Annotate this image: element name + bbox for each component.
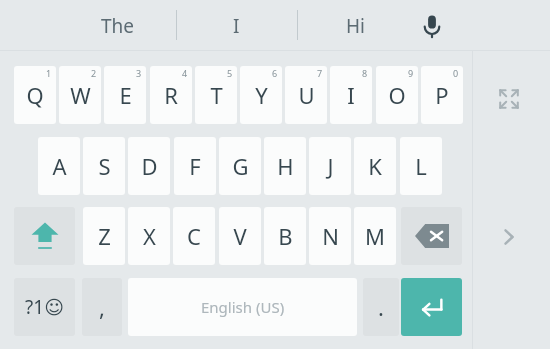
staticText: H [277, 151, 294, 181]
staticText: X [143, 221, 156, 251]
button[interactable]: G [219, 137, 261, 195]
button[interactable]: The [62, 0, 174, 51]
button[interactable]: A [38, 137, 80, 195]
staticText: English (US) [201, 297, 285, 317]
staticText: I [347, 80, 355, 110]
staticText: 1 [46, 67, 52, 79]
button[interactable]: F [174, 137, 216, 195]
button[interactable]: W [59, 66, 101, 124]
staticText: Z [98, 221, 111, 251]
button[interactable]: J [309, 137, 351, 195]
staticText: C [187, 221, 201, 251]
staticText: 3 [136, 67, 142, 79]
button[interactable]: E [104, 66, 146, 124]
staticText: ?1☺ [25, 294, 64, 320]
staticText: D [141, 151, 158, 181]
button[interactable]: . [363, 278, 399, 336]
staticText: B [278, 221, 293, 251]
button[interactable]: Q [14, 66, 56, 124]
staticText: S [98, 151, 111, 181]
staticText: T [210, 80, 223, 110]
button[interactable]: N [309, 207, 351, 265]
staticText: 6 [272, 67, 278, 79]
staticText: 2 [91, 67, 97, 79]
button[interactable]: K [354, 137, 396, 195]
button[interactable]: P [421, 66, 463, 124]
button[interactable]: Backspace [401, 207, 462, 265]
staticText: O [388, 80, 406, 110]
staticText: 4 [182, 67, 188, 79]
staticText: L [415, 151, 427, 181]
button[interactable]: V [219, 207, 261, 265]
staticText: Y [255, 80, 268, 110]
staticText: . [378, 292, 384, 322]
button[interactable]: L [400, 137, 442, 195]
button[interactable]: R [150, 66, 192, 124]
button[interactable]: O [376, 66, 418, 124]
staticText: 9 [408, 67, 414, 79]
button[interactable]: Y [240, 66, 282, 124]
staticText: 0 [453, 67, 459, 79]
button[interactable]: U [285, 66, 327, 124]
staticText: G [232, 151, 249, 181]
button[interactable]: , [82, 278, 122, 336]
button[interactable]: Next [490, 218, 528, 256]
staticText: 7 [317, 67, 323, 79]
button[interactable]: ?1☺ [14, 278, 75, 336]
staticText: , [99, 292, 105, 322]
button[interactable]: C [173, 207, 215, 265]
staticText: F [189, 151, 201, 181]
button[interactable]: Hi [299, 0, 411, 51]
button[interactable]: S [83, 137, 125, 195]
button[interactable]: B [264, 207, 306, 265]
staticText: M [365, 221, 385, 251]
staticText: Q [26, 80, 44, 110]
staticText: The [101, 13, 135, 39]
button[interactable]: D [128, 137, 170, 195]
staticText: A [52, 151, 67, 181]
button[interactable]: M [354, 207, 396, 265]
button[interactable]: Expand keyboard [490, 80, 528, 118]
staticText: N [322, 221, 339, 251]
button[interactable]: I [330, 66, 372, 124]
staticText: I [233, 13, 240, 39]
button[interactable]: X [128, 207, 170, 265]
staticText: E [119, 80, 132, 110]
button[interactable]: T [195, 66, 237, 124]
staticText: P [435, 80, 449, 110]
staticText: K [368, 151, 382, 181]
staticText: Hi [346, 13, 365, 39]
staticText: W [70, 80, 91, 110]
staticText: R [164, 80, 178, 110]
button[interactable]: Enter [401, 278, 462, 336]
button[interactable]: Z [83, 207, 125, 265]
button[interactable]: H [264, 137, 306, 195]
button[interactable]: Shift [14, 207, 75, 265]
staticText: U [298, 80, 315, 110]
button[interactable]: I [180, 0, 292, 51]
staticText: V [233, 221, 247, 251]
staticText: 8 [362, 67, 368, 79]
staticText: J [327, 151, 334, 181]
button[interactable]: Voice input [410, 4, 454, 48]
button[interactable]: English (US) [128, 278, 357, 336]
staticText: 5 [227, 67, 233, 79]
